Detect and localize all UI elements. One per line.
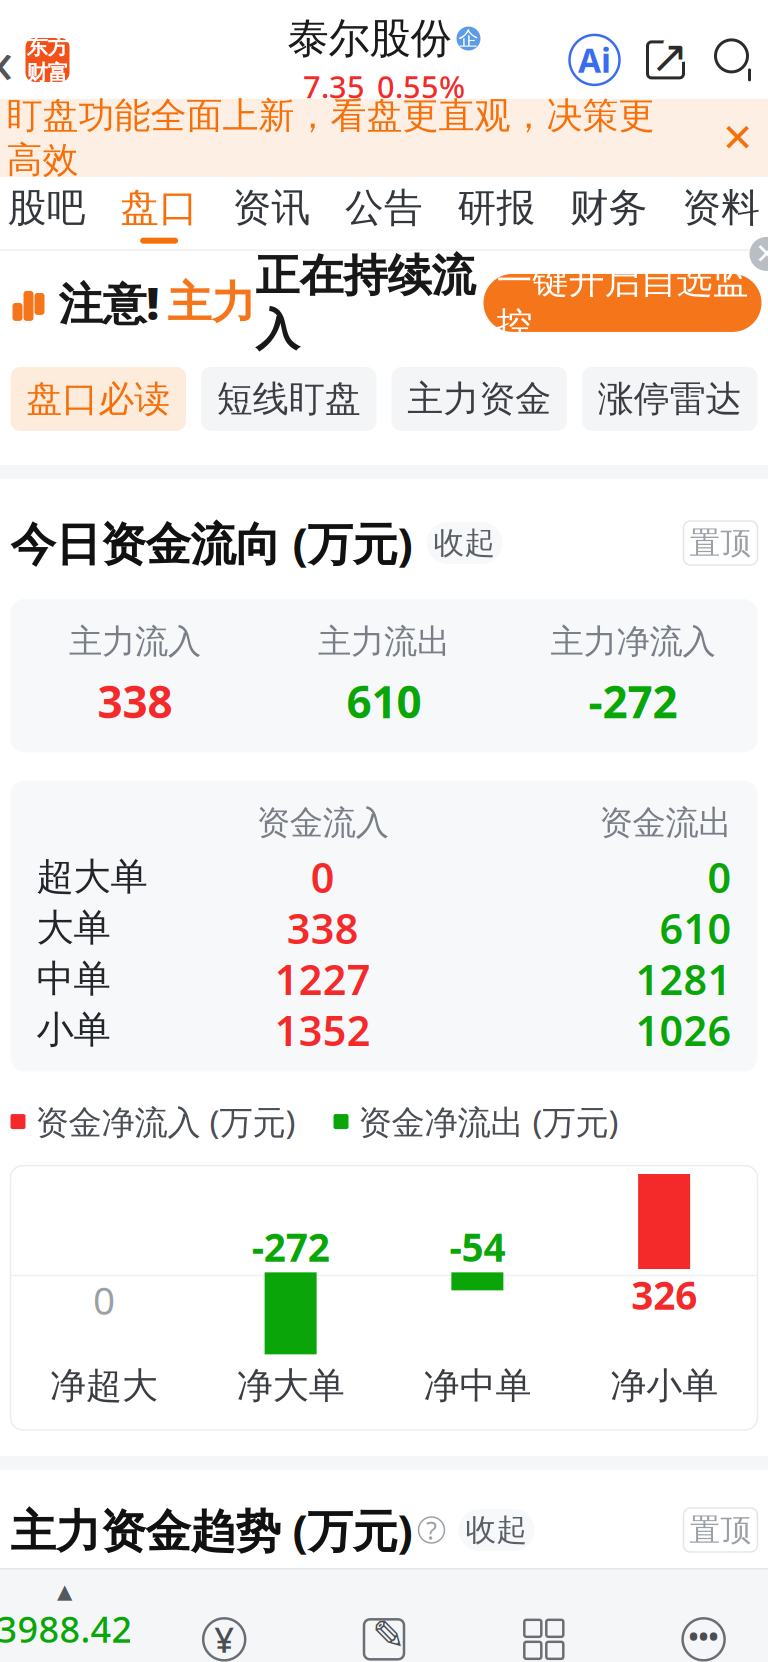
staticText: 涨停雷达 (598, 377, 742, 421)
staticText: 泰尔股份 (287, 13, 451, 64)
button[interactable]: 盘口 (103, 177, 215, 251)
staticText: 1281 (635, 951, 731, 1006)
staticText: 资金净流入 (万元) (35, 1099, 295, 1144)
button[interactable]: 短线盯盘 (201, 367, 376, 431)
button[interactable]: 资料 (665, 177, 768, 251)
button[interactable]: 盘口必读 (10, 367, 186, 431)
button[interactable]: 资讯 (215, 177, 328, 251)
staticText: 1352 (275, 1002, 371, 1057)
button[interactable]: 关闭提示 (713, 114, 761, 162)
staticText: ✕ (755, 238, 768, 270)
staticText: 置顶 (689, 1511, 751, 1549)
staticText: 净小单 (610, 1364, 718, 1408)
button[interactable]: 分享 (641, 36, 689, 84)
button[interactable]: 置顶 (683, 1508, 757, 1552)
staticText: 338 (287, 900, 359, 955)
staticText: 主力流出 (318, 621, 450, 662)
staticText: -54 (449, 1221, 505, 1272)
button[interactable]: ✎ (304, 1613, 464, 1662)
button[interactable]: 一键开启自选监控 (483, 274, 761, 332)
staticText: ▲ (57, 1580, 72, 1603)
staticText: 338 (97, 672, 172, 730)
staticText: 610 (346, 672, 421, 730)
button[interactable]: 收起 (458, 1509, 534, 1551)
staticText: 主力净流入 (550, 621, 715, 662)
button[interactable]: 研报 (440, 177, 553, 251)
staticText: 资金流入 (257, 802, 389, 843)
staticText: 盘口 (120, 184, 198, 232)
staticText: 主力流入 (69, 621, 201, 662)
staticText: 东方 财富 (26, 34, 68, 86)
staticText: 326 (631, 1269, 697, 1320)
staticText: 1227 (275, 951, 371, 1006)
staticText: 盯盘功能全面上新，看盘更直观，决策更高效 (6, 94, 654, 182)
staticText: 研报 (457, 184, 535, 232)
staticText: 7.35 (303, 66, 365, 107)
staticText: ¥ (214, 1616, 234, 1662)
staticText: -272 (252, 1221, 330, 1272)
staticText: 0.55% (377, 66, 465, 107)
staticText: 资讯 (233, 184, 311, 232)
staticText: ‹ (0, 19, 13, 101)
staticText: 一键开启自选监控 (496, 259, 748, 347)
staticText: 净超大 (50, 1364, 158, 1408)
staticText: 0 (707, 849, 731, 904)
button[interactable]: 主力资金 (391, 367, 567, 431)
staticText: 盘口必读 (26, 377, 170, 421)
staticText: 收起 (433, 524, 495, 562)
staticText: 3988.42 (0, 1605, 132, 1653)
staticText: -272 (588, 672, 677, 730)
button[interactable]: 财务 (553, 177, 665, 251)
staticText: 主力资金 (407, 377, 551, 421)
button[interactable]: 公告 (328, 177, 440, 251)
staticText: 收起 (465, 1511, 527, 1549)
button[interactable]: 涨停雷达 (582, 367, 757, 431)
staticText: 短线盯盘 (217, 377, 361, 421)
button[interactable]: ••• (624, 1613, 768, 1662)
staticText: 610 (659, 900, 731, 955)
button[interactable]: 股吧 (0, 177, 103, 251)
staticText: 主力 (167, 276, 255, 330)
staticText: ? (426, 1513, 437, 1547)
staticText: 净中单 (423, 1364, 531, 1408)
staticText: 大单 (36, 905, 110, 951)
staticText: 公告 (345, 184, 423, 232)
staticText: 主力资金趋势 (万元) (10, 1500, 412, 1560)
staticText: 企 (458, 26, 478, 51)
staticText: ↗ (650, 31, 688, 83)
button[interactable]: 返回 (0, 25, 79, 95)
staticText: 财务 (570, 184, 648, 232)
staticText: 股吧 (8, 184, 86, 232)
staticText: 超大单 (36, 854, 147, 900)
button[interactable]: 收起 (426, 522, 502, 564)
button[interactable]: ▲ (0, 1580, 144, 1662)
staticText: 资金流出 (599, 802, 731, 843)
staticText: 中单 (36, 956, 110, 1002)
staticText: ✕ (721, 116, 753, 160)
staticText: Ai (578, 38, 611, 82)
staticText: 置顶 (689, 524, 751, 562)
button[interactable]: 搜索 (711, 36, 759, 84)
staticText: 注意! (58, 274, 159, 332)
staticText: 0 (93, 1274, 115, 1325)
button[interactable]: AI 助手 (569, 35, 619, 85)
staticText: 资料 (682, 184, 760, 232)
button[interactable]: 置顶 (683, 521, 757, 565)
staticText: ✎ (372, 1613, 406, 1658)
staticText: 资金净流出 (万元) (358, 1099, 618, 1144)
staticText: 0 (311, 849, 335, 904)
staticText: ••• (689, 1619, 719, 1654)
button[interactable]: 关闭广告 (749, 237, 768, 271)
staticText: 1026 (635, 1002, 731, 1057)
button[interactable]: ¥ (144, 1613, 304, 1662)
staticText: 净大单 (237, 1364, 345, 1408)
staticText: 小单 (36, 1007, 110, 1053)
staticText: 正在持续流入 (255, 249, 475, 357)
staticText: 今日资金流向 (万元) (10, 513, 412, 573)
button[interactable]: 功能 (464, 1613, 624, 1662)
